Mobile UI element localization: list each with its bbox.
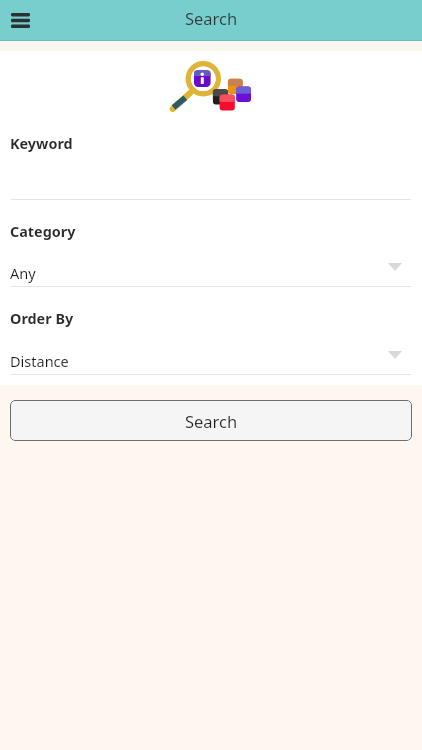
staticText: Category [10, 222, 76, 242]
staticText: Any [10, 263, 36, 283]
staticText: Order By [10, 309, 74, 329]
staticText: Search [185, 7, 238, 29]
button[interactable]: Distance [0, 347, 422, 375]
button[interactable]: Search [10, 400, 412, 441]
button[interactable]: Menu [2, 3, 38, 39]
staticText: Search [185, 410, 238, 432]
staticText: Keyword [10, 134, 73, 154]
button[interactable]: Any [0, 259, 422, 287]
staticText: Distance [10, 351, 69, 371]
